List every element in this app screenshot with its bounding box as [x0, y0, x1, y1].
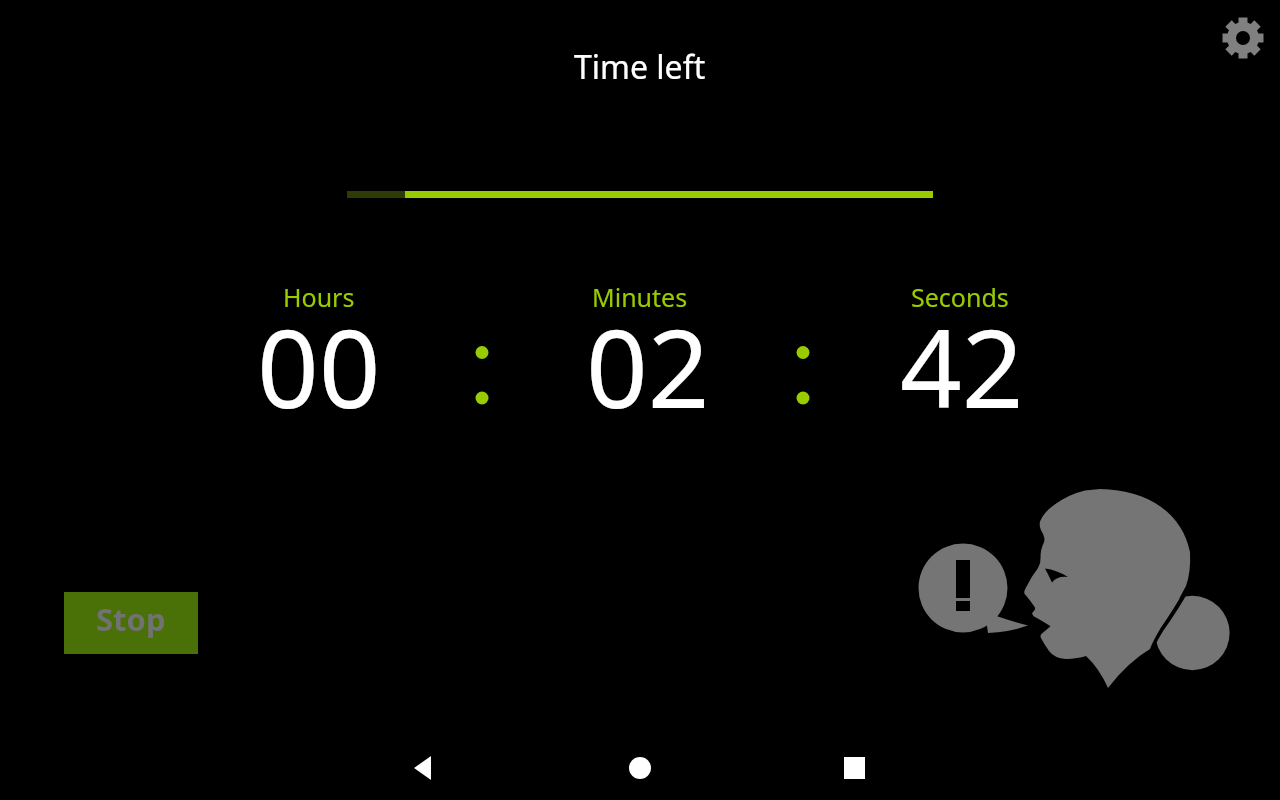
button[interactable]: Stop	[64, 592, 198, 654]
staticText: 02	[586, 293, 710, 440]
staticText: Stop	[96, 598, 166, 640]
staticText: Seconds	[911, 280, 1009, 314]
staticText: 42	[900, 293, 1024, 440]
staticText: Time left	[574, 45, 706, 89]
button[interactable]	[400, 752, 560, 800]
staticText: 00	[257, 293, 381, 440]
staticText: Hours	[283, 280, 355, 314]
button[interactable]	[720, 752, 880, 800]
staticText: Minutes	[592, 280, 688, 314]
button[interactable]	[1213, 8, 1273, 68]
button[interactable]	[560, 752, 720, 800]
